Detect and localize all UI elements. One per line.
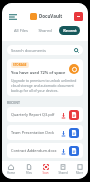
button[interactable]: STORAGE (7, 59, 83, 96)
staticText: Search documents (11, 48, 46, 53)
button[interactable]: Home (2, 161, 20, 179)
button[interactable]: All Files (10, 26, 31, 35)
staticText: Recent (63, 28, 77, 33)
button[interactable]: Document file (69, 146, 79, 156)
staticText: STORAGE (13, 63, 27, 67)
button[interactable]: Download (60, 130, 66, 136)
button[interactable]: Scan (37, 161, 54, 179)
staticText: Contract Addendum.docx (11, 148, 58, 153)
staticText: More (76, 171, 83, 175)
staticText: Upgrade to premium to unlock unlimited c… (11, 78, 79, 93)
staticText: DocuVault (39, 13, 63, 19)
staticText: Shared (38, 28, 52, 33)
button[interactable]: Shared (35, 26, 55, 35)
button[interactable]: Shared (54, 161, 71, 179)
button[interactable]: Download (60, 112, 66, 118)
button[interactable]: More (71, 161, 88, 179)
staticText: Home (7, 171, 15, 175)
staticText: Quarterly Report Q3.pdf (11, 112, 58, 117)
staticText: Files (26, 171, 32, 175)
button[interactable]: Menu (7, 11, 18, 22)
button[interactable]: Files (20, 161, 37, 179)
button[interactable]: Team Presentation Deck (7, 125, 83, 140)
button[interactable]: Contract Addendum.docx (7, 143, 83, 158)
button[interactable]: PDF file (69, 110, 79, 120)
button[interactable]: Recent (59, 26, 80, 35)
staticText: Team Presentation Deck (11, 130, 58, 135)
staticText: All Files (14, 28, 28, 33)
staticText: You have used 72% of space (11, 70, 66, 75)
button[interactable]: Notifications (74, 12, 83, 21)
button[interactable]: Download (60, 148, 66, 154)
button[interactable]: Quarterly Report Q3.pdf (7, 107, 83, 122)
staticText: RECENT (7, 100, 20, 105)
staticText: Scan (42, 171, 49, 175)
staticText: Shared (58, 171, 68, 175)
button[interactable]: Document file (69, 128, 79, 138)
button[interactable]: Search documents (7, 45, 83, 55)
